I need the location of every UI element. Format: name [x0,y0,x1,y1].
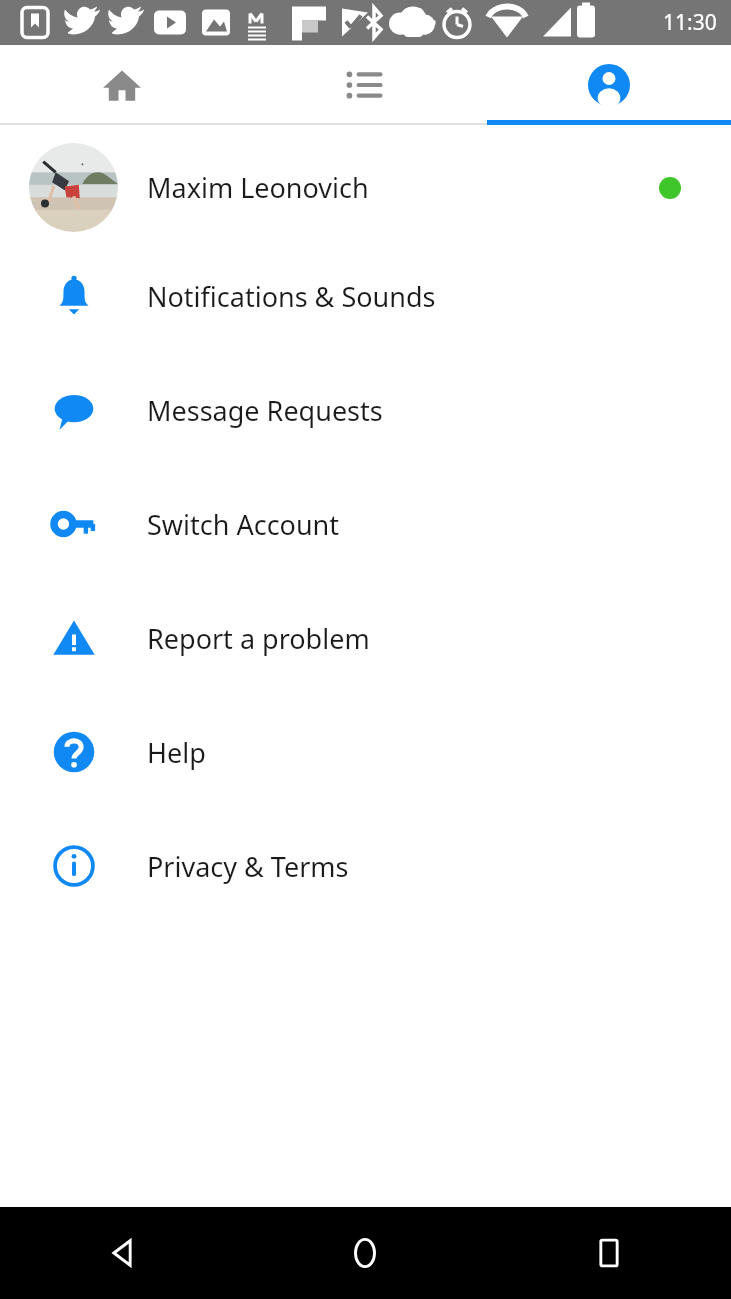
button[interactable]: Recent apps [487,1207,731,1299]
button[interactable]: Maxim Leonovich [0,136,731,239]
button[interactable]: Home [243,1207,487,1299]
staticText: Report a problem [147,620,370,657]
button[interactable]: Privacy & Terms [0,809,731,923]
staticText: Maxim Leonovich [147,169,369,206]
button[interactable]: Back [0,1207,243,1299]
button[interactable]: Home [0,45,243,125]
staticText: Message Requests [147,392,383,429]
button[interactable]: Message Requests [0,353,731,467]
button[interactable]: Notifications & Sounds [0,239,731,353]
staticText: Notifications & Sounds [147,278,436,315]
staticText: Privacy & Terms [147,848,349,885]
button[interactable]: List [243,45,487,125]
button[interactable]: Profile [487,45,731,125]
staticText: Switch Account [147,506,340,543]
staticText: 11:30 [663,8,717,37]
staticText: Help [147,734,206,771]
button[interactable]: Report a problem [0,581,731,695]
button[interactable]: Switch Account [0,467,731,581]
button[interactable]: Help [0,695,731,809]
